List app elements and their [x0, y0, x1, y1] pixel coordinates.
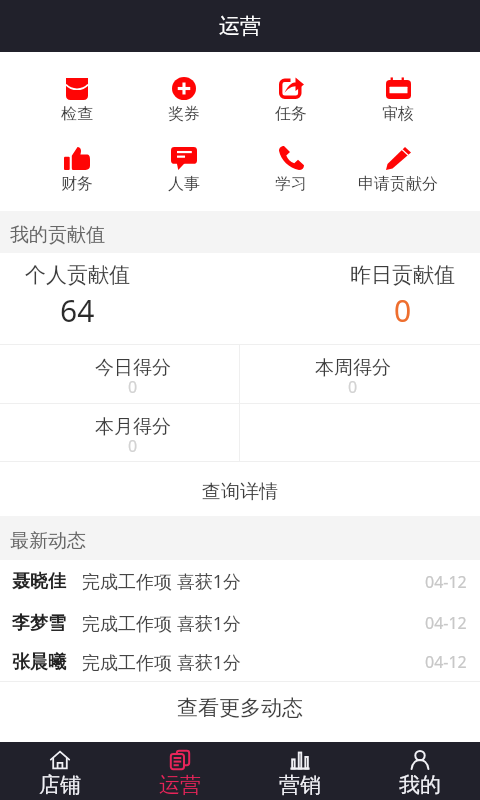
button[interactable]: 本周得分 — [240, 345, 480, 403]
staticText: 学习 — [275, 174, 307, 194]
staticText: 04-12 — [425, 651, 467, 673]
staticText: 聂晓佳 — [12, 570, 66, 593]
button[interactable]: 我的 — [360, 742, 480, 800]
staticText: 任务 — [275, 104, 307, 124]
staticText: 个人贡献值 — [25, 262, 130, 288]
staticText: 本周得分 — [315, 356, 391, 380]
staticText: 运营 — [219, 13, 261, 39]
staticText: 64 — [60, 290, 95, 331]
staticText: 审核 — [382, 104, 414, 124]
button[interactable]: 奖券 — [130, 76, 237, 124]
button[interactable]: 本月得分 — [0, 404, 239, 461]
staticText: 查询详情 — [202, 480, 278, 504]
button[interactable]: 运营 — [120, 742, 240, 800]
other: 营销 — [290, 750, 310, 770]
staticText: 申请贡献分 — [358, 174, 438, 194]
staticText: 营销 — [279, 772, 321, 798]
staticText: 李梦雪 — [12, 612, 66, 635]
staticText: 本月得分 — [95, 415, 171, 439]
staticText: 完成工作项 喜获1分 — [82, 611, 241, 636]
other: 店铺 — [50, 750, 70, 770]
button[interactable]: 营销 — [240, 742, 360, 800]
staticText: 检查 — [61, 104, 93, 124]
button[interactable]: 李梦雪 — [0, 603, 480, 643]
other: 运营 — [170, 750, 190, 770]
staticText: 财务 — [61, 174, 93, 194]
staticText: 店铺 — [39, 772, 81, 798]
staticText: 最新动态 — [10, 529, 86, 553]
staticText: 0 — [128, 376, 138, 398]
button[interactable]: 申请贡献分 — [344, 146, 451, 194]
staticText: 0 — [348, 376, 358, 398]
button[interactable]: 查询详情 — [0, 462, 480, 516]
staticText: 昨日贡献值 — [350, 262, 455, 288]
staticText: 人事 — [168, 174, 200, 194]
staticText: 04-12 — [425, 571, 467, 593]
staticText: 张晨曦 — [12, 651, 66, 674]
button[interactable]: 审核 — [344, 76, 451, 124]
staticText: 奖券 — [168, 104, 200, 124]
button[interactable]: 人事 — [130, 146, 237, 194]
button[interactable]: 查看更多动态 — [0, 682, 480, 742]
button[interactable]: 财务 — [24, 146, 130, 194]
staticText: 今日得分 — [95, 356, 171, 380]
staticText: 完成工作项 喜获1分 — [82, 650, 241, 675]
button[interactable]: 学习 — [237, 146, 344, 194]
button[interactable]: 今日得分 — [0, 345, 239, 403]
button[interactable]: 店铺 — [0, 742, 120, 800]
staticText: 完成工作项 喜获1分 — [82, 569, 241, 594]
staticText: 0 — [128, 435, 138, 457]
button[interactable]: 张晨曦 — [0, 643, 480, 681]
staticText: 查看更多动态 — [177, 695, 303, 721]
staticText: 我的贡献值 — [10, 223, 105, 247]
staticText: 运营 — [159, 772, 201, 798]
staticText: 04-12 — [425, 612, 467, 634]
other: 我的 — [410, 750, 430, 770]
staticText: 我的 — [399, 772, 441, 798]
button[interactable]: 检查 — [24, 76, 130, 124]
button[interactable]: 任务 — [237, 76, 344, 124]
staticText: 0 — [394, 290, 412, 331]
button[interactable]: 聂晓佳 — [0, 560, 480, 603]
